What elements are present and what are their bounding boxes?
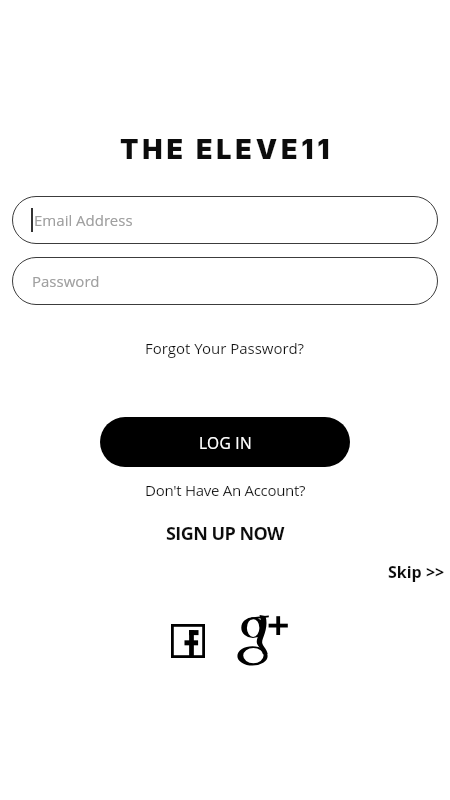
button[interactable]: Email Address [12, 196, 438, 244]
staticText: Email Address [34, 210, 133, 230]
staticText: Don't Have An Account? [145, 480, 306, 500]
staticText: LOG IN [199, 432, 252, 453]
button[interactable]: Forgot Your Password? [145, 338, 305, 358]
button[interactable]: LOG IN [100, 417, 350, 467]
button[interactable]: Sign in with Facebook [171, 624, 205, 658]
staticText: THE ELEVE11 [120, 133, 334, 166]
button[interactable]: SIGN UP NOW [166, 521, 284, 546]
button[interactable]: Sign in with Google Plus [237, 613, 288, 667]
button[interactable]: Password [12, 257, 438, 305]
staticText: Password [32, 271, 100, 291]
button[interactable]: Skip >> [388, 561, 450, 583]
